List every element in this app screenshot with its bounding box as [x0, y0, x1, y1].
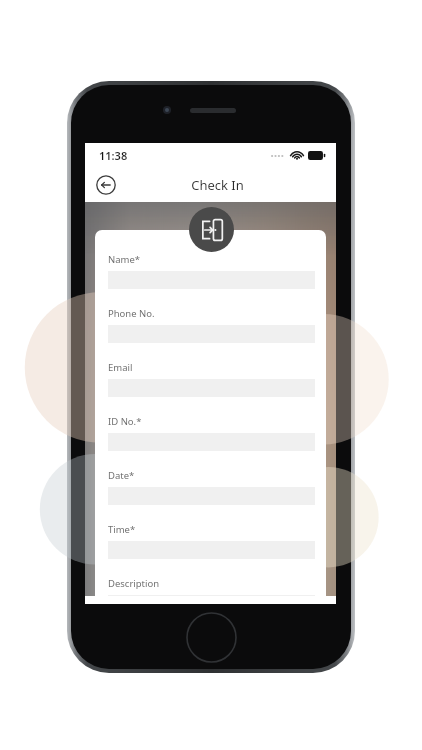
staticText: Name* [108, 253, 141, 266]
staticText: Phone No. [108, 307, 155, 320]
staticText: Check In [191, 176, 244, 194]
staticText: Time* [108, 523, 136, 536]
staticText: Description [108, 577, 160, 590]
button[interactable]: Check in [189, 207, 234, 252]
staticText: ID No.* [108, 415, 142, 428]
staticText: Email [108, 361, 133, 374]
staticText: Date* [108, 469, 135, 482]
button[interactable]: Back [93, 172, 119, 198]
staticText: 11:38 [99, 148, 128, 163]
